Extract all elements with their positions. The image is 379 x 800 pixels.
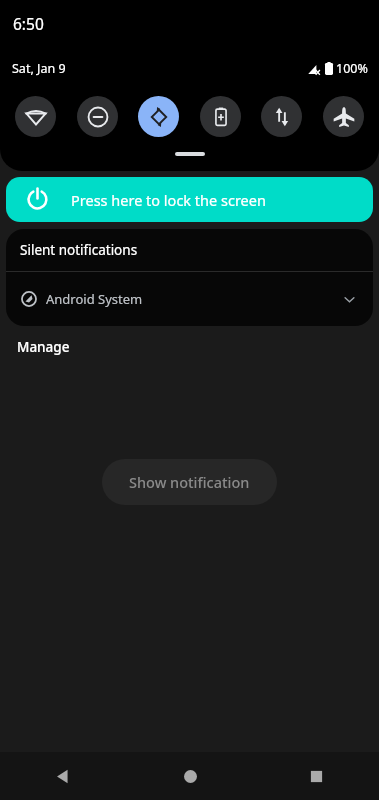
staticText: 6:50 [13, 13, 44, 34]
button[interactable]: Silent notifications [6, 229, 373, 271]
button[interactable]: Do Not Disturb [77, 96, 118, 137]
button[interactable]: Back [0, 752, 127, 800]
staticText: Press here to lock the screen [71, 190, 266, 210]
button[interactable]: Battery Saver [200, 96, 241, 137]
button[interactable]: Recents [253, 752, 379, 800]
button[interactable]: Home [127, 752, 253, 800]
staticText: Show notification [129, 472, 250, 492]
staticText: 100% [336, 60, 368, 77]
staticText: Android System [46, 290, 143, 308]
button[interactable]: Show notification [102, 459, 277, 505]
button[interactable]: Auto rotate [138, 96, 179, 137]
staticText: Sat, Jan 9 [12, 60, 66, 77]
button[interactable]: Internet [15, 96, 56, 137]
button[interactable]: Airplane mode [323, 96, 364, 137]
staticText: Silent notifications [20, 241, 138, 259]
staticText: Manage [17, 338, 70, 356]
button[interactable]: Mobile data [261, 96, 302, 137]
button[interactable]: Manage [17, 332, 70, 362]
button[interactable]: Expand notification [334, 284, 364, 314]
button[interactable]: Press here to lock the screen [6, 177, 373, 222]
button[interactable]: Android System [6, 272, 373, 326]
